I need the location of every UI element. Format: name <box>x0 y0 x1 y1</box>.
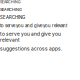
staticText: to serve you and give you relevant <box>0 31 61 43</box>
staticText: SEARCHING <box>0 15 25 20</box>
staticText: to serve you and give you relevant <box>0 23 67 28</box>
staticText: suggestions across apps. <box>0 46 62 52</box>
staticText: SEARCHING <box>0 0 21 4</box>
staticText: SEARCHING <box>0 7 22 12</box>
